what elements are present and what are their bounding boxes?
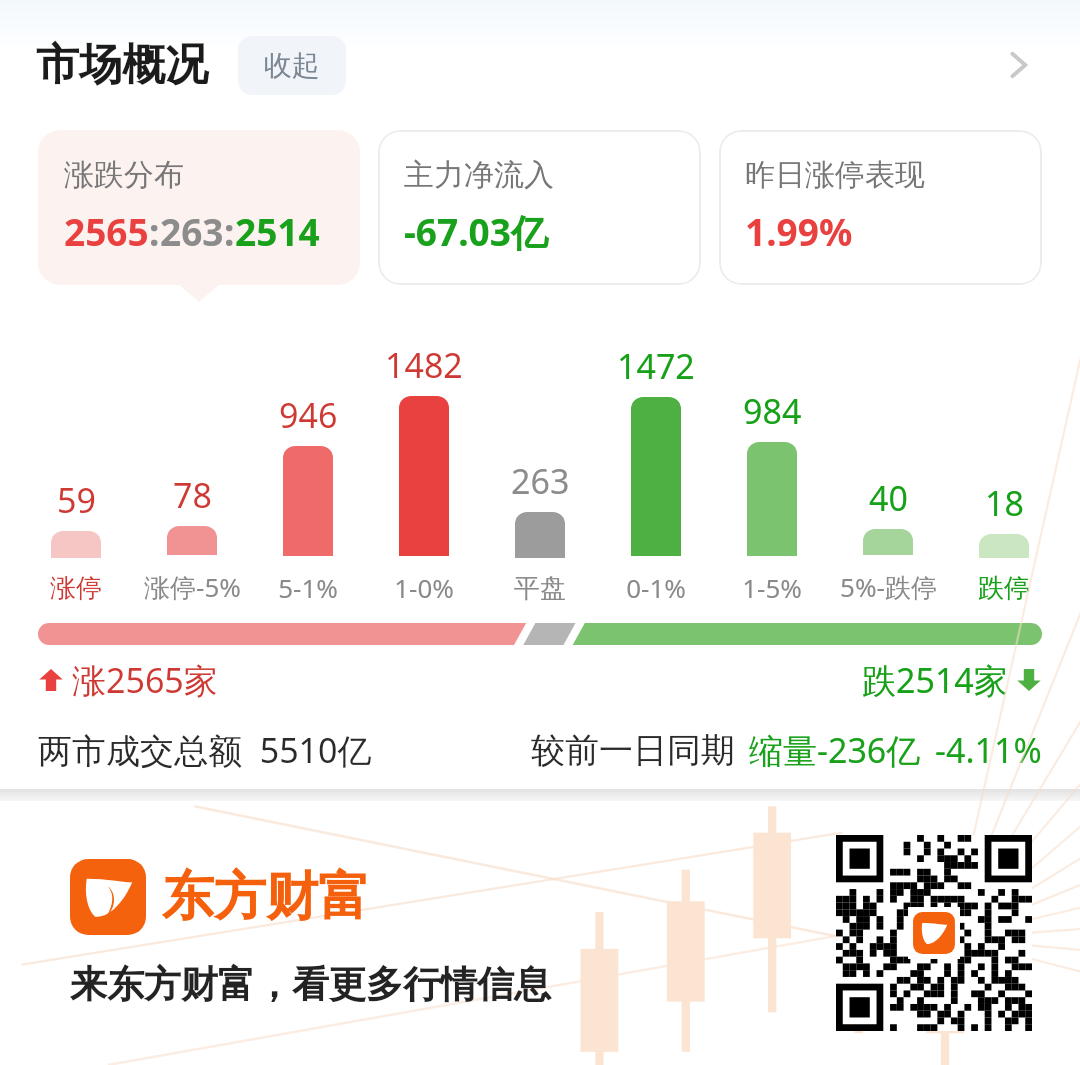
button[interactable]: More (986, 33, 1050, 97)
staticText: 5-1% (278, 570, 338, 605)
staticText: 2514 (235, 206, 320, 256)
staticText: 984 (743, 388, 802, 434)
staticText: 946 (279, 392, 338, 438)
button[interactable]: 涨跌分布 (38, 130, 360, 285)
staticText: 涨2565家 (72, 657, 218, 703)
button[interactable]: 主力净流入 (378, 130, 701, 285)
staticText: 18 (985, 480, 1024, 526)
staticText: 跌停 (978, 572, 1030, 605)
staticText: 涨停-5% (144, 569, 241, 605)
button[interactable]: 收起 (238, 36, 346, 95)
staticText: 263 (160, 206, 224, 256)
staticText: 昨日涨停表现 (745, 156, 925, 194)
staticText: : (149, 206, 160, 256)
staticText: -67.03亿 (404, 206, 548, 257)
staticText: 1.99% (745, 206, 853, 256)
staticText: 2565 (64, 206, 149, 256)
staticText: 跌2514家 (862, 657, 1008, 703)
staticText: 1482 (385, 342, 463, 388)
staticText: 缩量-236亿 (749, 727, 921, 773)
staticText: 59 (57, 477, 96, 523)
staticText: 收起 (264, 48, 320, 83)
staticText: 5%-跌停 (840, 569, 937, 605)
staticText: 市场概况 (36, 38, 208, 92)
staticText: 两市成交总额 5510亿 (38, 727, 372, 773)
staticText: 40 (869, 475, 908, 521)
staticText: 主力净流入 (404, 156, 554, 194)
staticText: 1-5% (742, 570, 802, 605)
staticText: 来东方财富，看更多行情信息 (70, 961, 551, 1008)
staticText: 涨跌分布 (64, 156, 184, 194)
staticText: 1-0% (394, 570, 454, 605)
staticText: 东方财富 (162, 864, 370, 930)
staticText: 263 (511, 458, 570, 504)
other: QR code (836, 835, 1032, 1031)
staticText: : (224, 206, 235, 256)
staticText: 涨停 (50, 572, 102, 605)
staticText: 1472 (617, 343, 695, 389)
staticText: 0-1% (626, 570, 686, 605)
staticText: 较前一日同期 (531, 729, 735, 772)
staticText: -4.11% (935, 727, 1042, 773)
staticText: 78 (173, 472, 212, 518)
staticText: 平盘 (514, 572, 566, 605)
button[interactable]: 昨日涨停表现 (719, 130, 1042, 285)
